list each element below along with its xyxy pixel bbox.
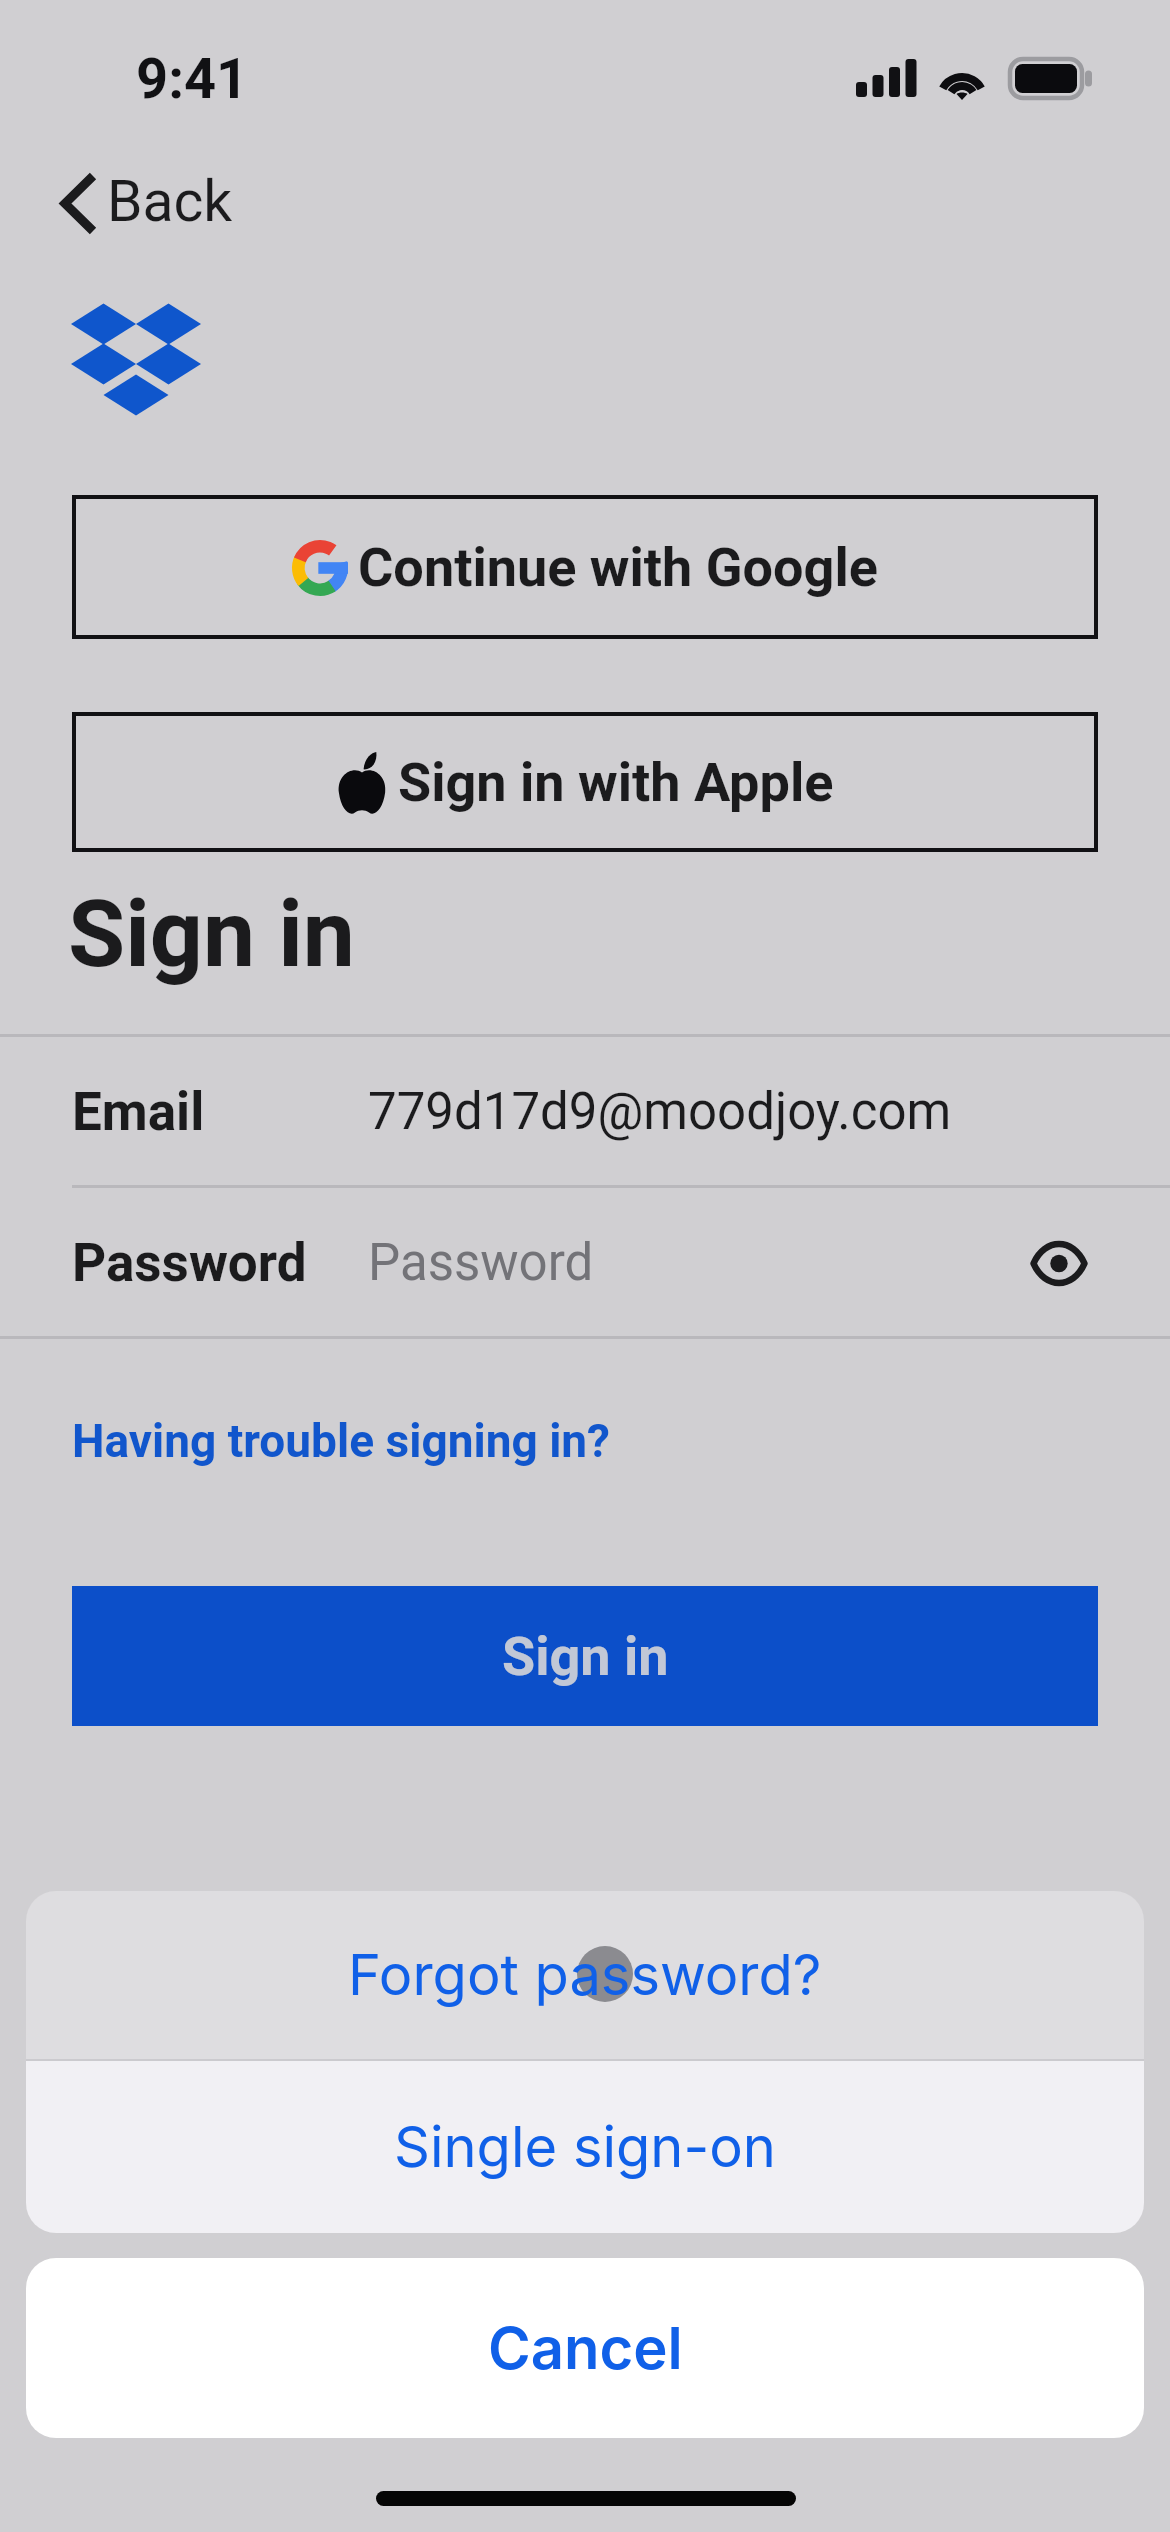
button[interactable]: Continue with Google	[72, 495, 1098, 639]
button[interactable]: Back	[61, 148, 233, 258]
staticText: 779d17d9@moodjoy.com	[368, 1082, 952, 1142]
button[interactable]: Sign in with Apple	[72, 712, 1098, 852]
staticText: Sign in with Apple	[398, 751, 834, 814]
staticText: Password	[368, 1233, 594, 1293]
staticText: Having trouble signing in?	[72, 1414, 611, 1468]
staticText: Email	[72, 1081, 205, 1143]
staticText: Cancel	[488, 2313, 683, 2383]
button[interactable]: Having trouble signing in?	[64, 1400, 619, 1482]
staticText: Password	[72, 1232, 307, 1294]
button[interactable]: Cancel	[26, 2258, 1144, 2438]
staticText: Continue with Google	[358, 536, 878, 599]
button[interactable]: Single sign-on	[26, 2061, 1144, 2233]
staticText: Forgot password?	[348, 1941, 822, 2009]
button[interactable]: Password	[0, 1188, 1170, 1337]
button[interactable]: Email	[0, 1037, 1170, 1186]
staticText: Back	[107, 168, 233, 235]
button[interactable]: Show password	[1016, 1220, 1102, 1306]
staticText: Sign in	[502, 1625, 669, 1688]
staticText: Sign in	[68, 880, 355, 989]
staticText: 9:41	[136, 46, 249, 112]
button[interactable]: Forgot password?	[26, 1891, 1144, 2059]
staticText: Single sign-on	[394, 2113, 776, 2181]
button[interactable]: Sign in	[72, 1586, 1098, 1726]
